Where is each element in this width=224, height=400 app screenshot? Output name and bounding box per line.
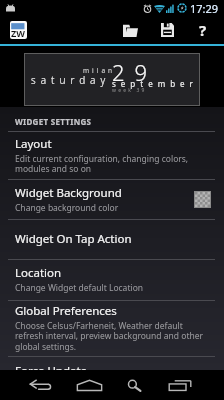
staticText: Widget On Tap Action: [15, 231, 132, 247]
staticText: Global Preferences: [15, 303, 117, 319]
staticText: Edit current configuration, changing col…: [15, 153, 189, 175]
staticText: ?: [199, 20, 207, 40]
staticText: milan: [83, 66, 116, 75]
button[interactable]: Help: [190, 17, 216, 43]
button[interactable]: Force Update: [0, 356, 224, 396]
staticText: 29: [112, 57, 158, 87]
button[interactable]: Widget Background: [0, 179, 224, 219]
staticText: saturday: [31, 73, 111, 87]
staticText: Location: [15, 265, 62, 281]
staticText: Choose Celsus/Farheneit, Weather default…: [15, 320, 204, 353]
button[interactable]: Global Preferences: [0, 300, 224, 356]
staticText: Force Update: [15, 363, 88, 379]
button[interactable]: Location: [0, 259, 224, 300]
staticText: Layout: [15, 136, 52, 152]
staticText: week 39: [112, 87, 147, 94]
button[interactable]: Open: [117, 17, 143, 43]
button[interactable]: Widget On Tap Action: [0, 219, 224, 259]
button[interactable]: Save: [154, 17, 180, 43]
staticText: WIDGET SETTINGS: [15, 116, 92, 127]
button[interactable]: milan: [24, 53, 200, 106]
staticText: september: [112, 78, 198, 89]
staticText: 17:29: [190, 1, 219, 16]
button[interactable]: Back: [22, 370, 57, 400]
staticText: ZW: [11, 27, 25, 39]
button[interactable]: Home: [70, 370, 109, 400]
button[interactable]: Recents: [162, 370, 198, 400]
staticText: Change background color: [15, 202, 119, 214]
staticText: Change Widget default Location: [15, 282, 144, 294]
button[interactable]: Search: [118, 370, 150, 400]
button[interactable]: App icon: [10, 21, 27, 39]
staticText: Widget Background: [15, 185, 122, 201]
button[interactable]: Layout: [0, 131, 224, 179]
